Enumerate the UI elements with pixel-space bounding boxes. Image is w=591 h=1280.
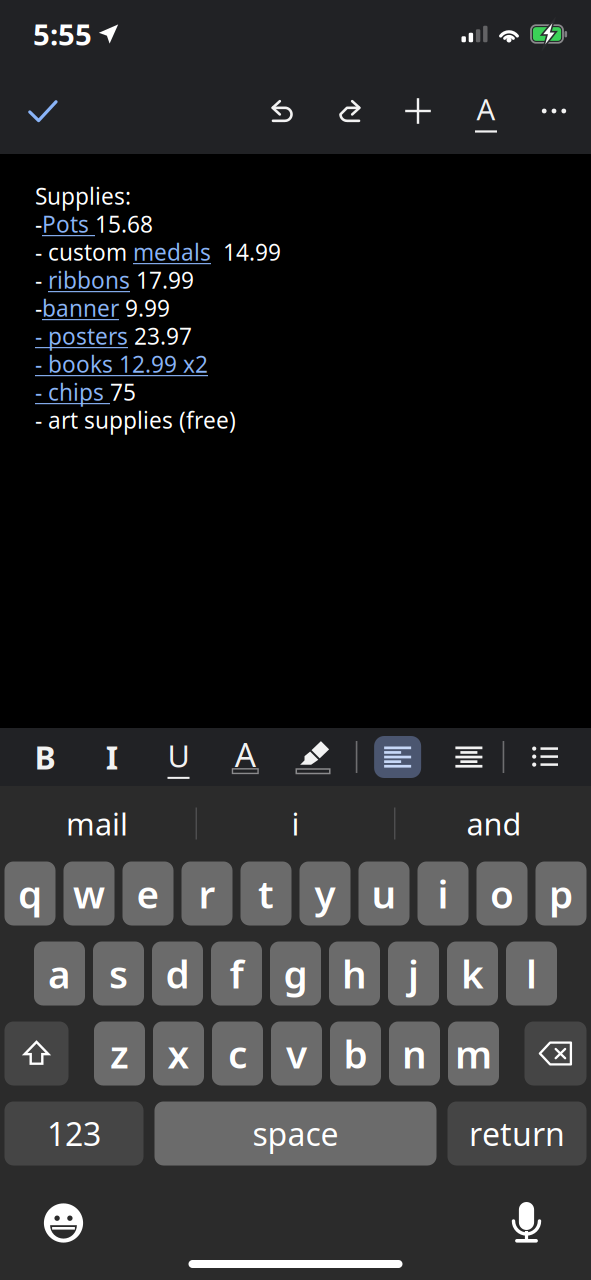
button[interactable]: More options [520,77,588,145]
button[interactable]: f [211,941,262,1005]
staticText: h [342,948,367,999]
button[interactable]: Redo [316,77,384,145]
button[interactable]: Text formatting [452,77,520,145]
button[interactable]: 123 [4,1101,143,1165]
button[interactable]: o [476,861,527,925]
button[interactable]: w [63,861,114,925]
staticText: banner [42,293,119,323]
staticText: 123 [47,1112,101,1155]
staticText: A [235,732,256,776]
button[interactable]: Done [12,80,74,142]
staticText: p [549,868,573,919]
button[interactable]: Italic [87,732,137,782]
staticText: t [258,868,274,919]
button[interactable]: y [299,861,350,925]
staticText: b [343,1028,367,1079]
button[interactable]: space [154,1101,436,1165]
staticText: B [34,736,55,778]
button[interactable]: h [329,941,380,1005]
staticText: z [110,1028,129,1079]
button[interactable]: n [389,1021,440,1085]
staticText: e [136,868,159,919]
staticText: - [35,293,42,323]
staticText: v [286,1028,307,1079]
staticText: - [35,265,48,295]
button[interactable]: p [535,861,586,925]
button[interactable]: and [395,786,591,861]
button[interactable]: x [153,1021,204,1085]
button[interactable]: Align left [374,732,421,782]
button[interactable]: k [447,941,498,1005]
staticText: a [48,948,71,999]
button[interactable]: m [448,1021,499,1085]
staticText: i [437,868,448,919]
button[interactable]: mail [0,786,196,861]
button[interactable]: Align centre [438,733,486,781]
button[interactable]: q [4,861,55,925]
staticText: r [198,868,215,919]
button[interactable]: v [271,1021,322,1085]
staticText: medals [133,237,211,267]
staticText: l [526,948,537,999]
button[interactable]: u [358,861,409,925]
staticText: space [252,1112,338,1155]
button[interactable]: r [181,861,232,925]
staticText: s [109,948,128,999]
button[interactable]: b [330,1021,381,1085]
button[interactable]: Emoji [43,1203,83,1243]
staticText: w [73,868,105,919]
button[interactable]: c [212,1021,263,1085]
staticText: u [371,868,396,919]
staticText: 15.68 [95,209,153,239]
staticText: f [229,948,243,999]
staticText: A [476,89,495,128]
button[interactable]: Text colour [220,732,270,782]
button[interactable]: Dictation [510,1201,542,1245]
staticText: mail [66,803,128,844]
staticText: c [228,1028,247,1079]
staticText: j [408,948,419,999]
button[interactable]: Underline [153,732,203,782]
staticText: return [469,1112,565,1155]
button[interactable]: Delete [524,1021,586,1085]
staticText: d [165,948,189,999]
button[interactable]: Insert [384,77,452,145]
staticText: Pots [42,209,95,239]
staticText: o [490,868,514,919]
button[interactable]: z [94,1021,145,1085]
staticText: k [461,948,484,999]
staticText: Supplies: [35,181,131,211]
button[interactable]: g [270,941,321,1005]
button[interactable]: a [34,941,85,1005]
staticText: - posters [35,321,128,351]
staticText: 14.99 [211,237,281,267]
staticText: i [291,803,299,844]
staticText: - chips [35,377,110,407]
staticText: and [466,803,521,844]
staticText: n [402,1028,427,1079]
staticText: - art supplies (free) [35,405,236,435]
button[interactable]: s [93,941,144,1005]
staticText: q [18,868,42,919]
staticText: - [35,209,42,239]
button[interactable]: d [152,941,203,1005]
staticText: I [106,736,118,778]
button[interactable]: Shift [4,1021,68,1085]
staticText: - custom [35,237,133,267]
button[interactable]: Bold [20,732,70,782]
staticText: g [283,948,307,999]
button[interactable]: e [122,861,173,925]
button[interactable]: j [388,941,439,1005]
button[interactable]: Undo [248,77,316,145]
button[interactable]: Bulleted list [521,733,569,781]
staticText: ribbons [48,265,130,295]
staticText: 75 [110,377,136,407]
button[interactable]: t [240,861,291,925]
staticText: 9.99 [119,293,170,323]
button[interactable]: i [197,786,394,861]
button[interactable]: Highlight [287,732,339,782]
button[interactable]: i [417,861,468,925]
button[interactable]: return [447,1101,586,1165]
staticText: U [167,735,189,776]
button[interactable]: l [506,941,557,1005]
